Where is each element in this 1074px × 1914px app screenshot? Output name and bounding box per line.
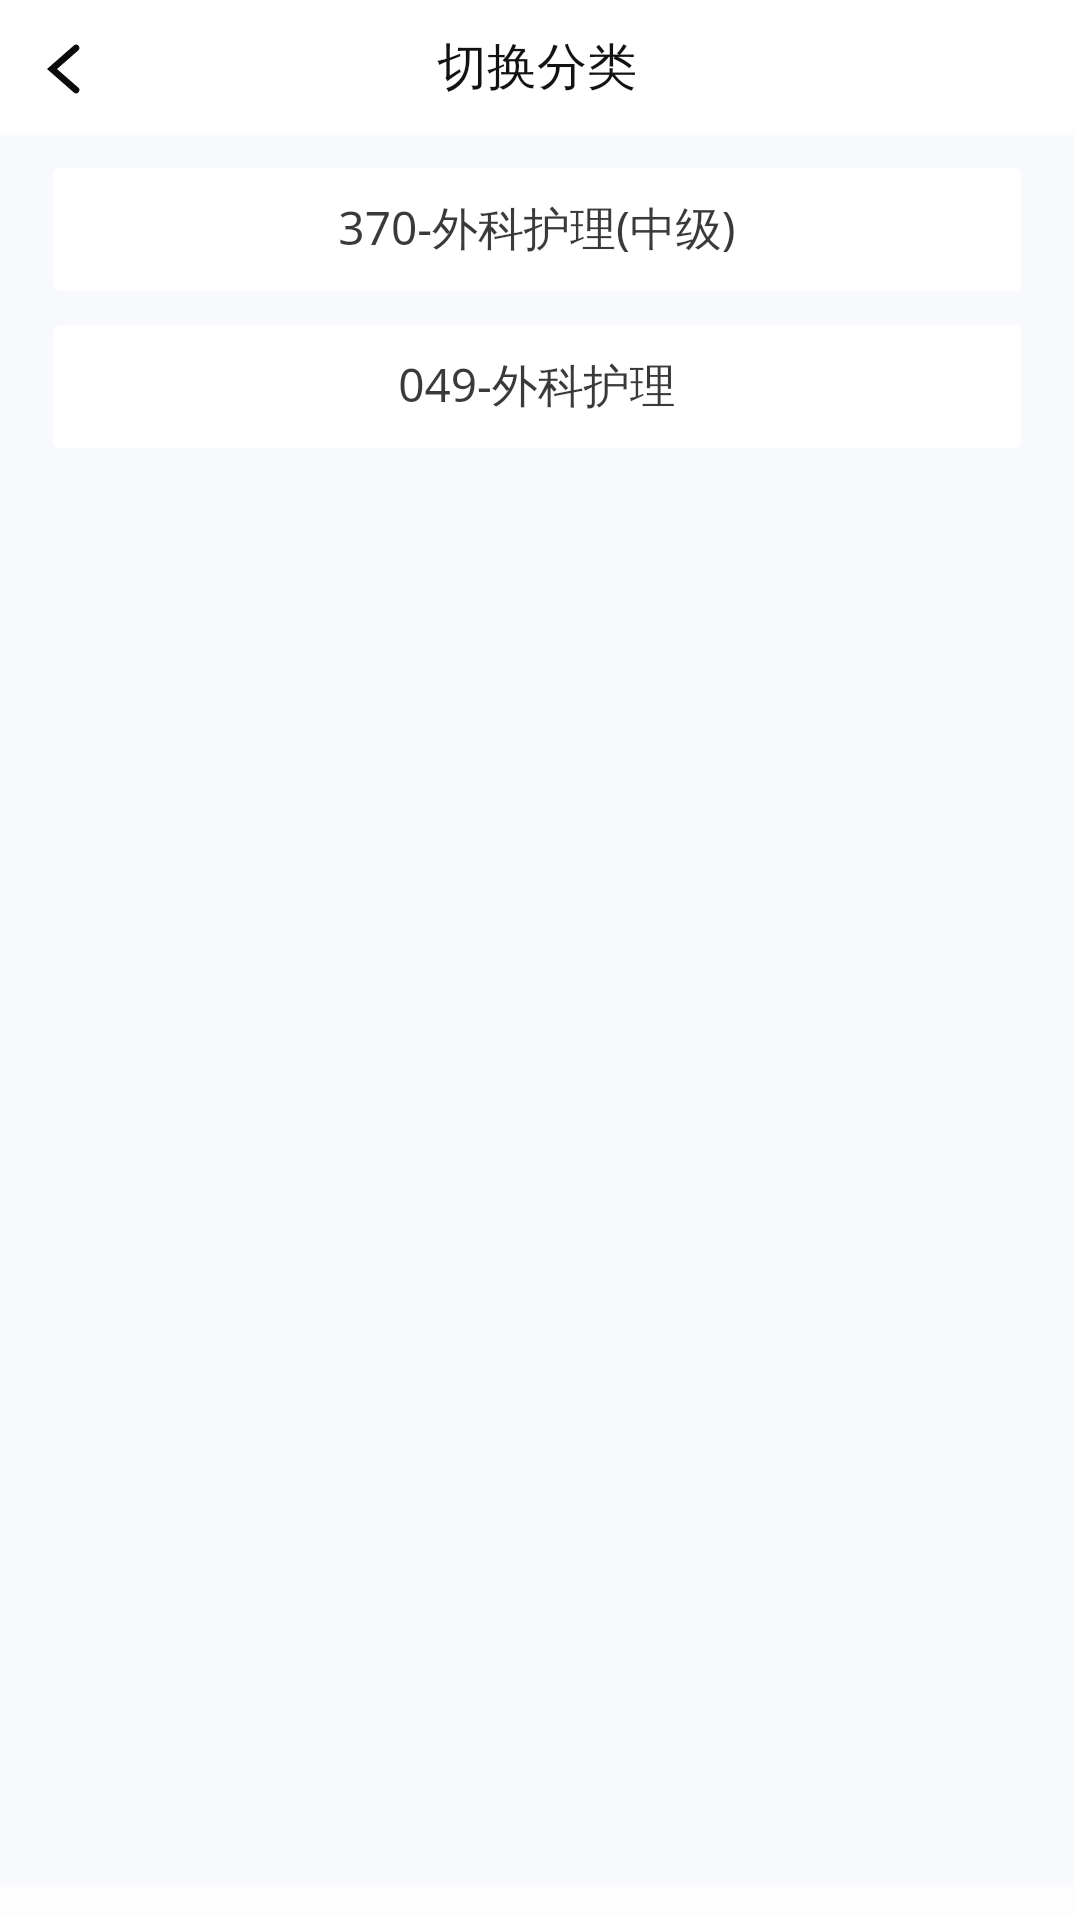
staticText: 370-外科护理(中级) xyxy=(338,196,736,259)
staticText: 049-外科护理 xyxy=(398,353,676,416)
button[interactable]: 049-外科护理 xyxy=(53,325,1021,448)
staticText: 切换分类 xyxy=(437,36,637,99)
button[interactable]: Back xyxy=(19,24,107,112)
button[interactable]: 370-外科护理(中级) xyxy=(53,168,1021,291)
